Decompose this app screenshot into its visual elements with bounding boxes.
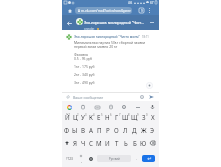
- button[interactable]: Е: [95, 110, 103, 123]
- staticText: Е: [97, 113, 101, 121]
- button[interactable]: Ц: [71, 110, 79, 123]
- button[interactable]: More options: [146, 7, 153, 14]
- button[interactable]: И: [103, 136, 112, 149]
- staticText: Ы: [72, 126, 78, 134]
- button[interactable]: ?123: [63, 149, 76, 167]
- button[interactable]: О: [112, 123, 121, 136]
- button[interactable]: Attach: [65, 94, 71, 100]
- button[interactable]: Backspace: [148, 136, 157, 149]
- button[interactable]: Back: [65, 19, 74, 28]
- staticText: 7: [119, 113, 121, 117]
- button[interactable]: [66, 34, 72, 40]
- button[interactable]: Э: [148, 123, 157, 136]
- staticText: Я: [73, 139, 77, 147]
- button[interactable]: GIF: [93, 103, 101, 111]
- button[interactable]: Т: [112, 136, 121, 149]
- staticText: m.vk.com/mail?act=show&peer: [81, 8, 131, 13]
- staticText: В: [81, 126, 86, 134]
- staticText: GIF: [96, 106, 100, 109]
- staticText: Ш: [122, 113, 129, 121]
- button[interactable]: Settings: [120, 103, 128, 111]
- staticText: ?123: [66, 157, 73, 161]
- button[interactable]: Comma and emoji: [76, 149, 86, 167]
- button[interactable]: Scroll to bottom: [146, 82, 153, 89]
- button[interactable]: М: [95, 136, 103, 149]
- staticText: 5: [101, 113, 103, 117]
- staticText: 2: [77, 113, 79, 117]
- staticText: Русский: [109, 157, 120, 161]
- staticText: Д: [132, 126, 137, 134]
- button[interactable]: Enter: [142, 155, 155, 162]
- staticText: Ь: [124, 139, 128, 147]
- staticText: 4:5: [128, 1, 133, 5]
- button[interactable]: Tabs: [138, 7, 145, 14]
- staticText: Э: [150, 126, 155, 134]
- button[interactable]: Ч: [79, 136, 87, 149]
- button[interactable]: Г: [112, 110, 121, 123]
- button[interactable]: С: [87, 136, 95, 149]
- button[interactable]: Google search: [65, 103, 73, 111]
- staticText: У: [81, 113, 85, 121]
- staticText: С: [89, 139, 93, 147]
- staticText: Т: [115, 139, 119, 147]
- staticText: Н: [105, 113, 110, 121]
- button[interactable]: У: [79, 110, 87, 123]
- button[interactable]: Б: [130, 136, 139, 149]
- button[interactable]: Д: [130, 123, 139, 136]
- button[interactable]: [76, 18, 83, 25]
- staticText: Ваше сообщение: [73, 95, 104, 100]
- button[interactable]: Н: [103, 110, 112, 123]
- button[interactable]: З: [139, 110, 148, 123]
- button[interactable]: Emoji: [139, 94, 145, 100]
- button[interactable]: А: [87, 123, 95, 136]
- button[interactable]: Х: [148, 110, 157, 123]
- button[interactable]: m.vk.com/mail?act=show&peer: [75, 7, 132, 14]
- button[interactable]: Л: [121, 123, 130, 136]
- button[interactable]: Ш: [121, 110, 130, 123]
- button[interactable]: Ь: [121, 136, 130, 149]
- staticText: И: [105, 139, 110, 147]
- button[interactable]: П: [95, 123, 103, 136]
- staticText: Щ: [131, 113, 138, 121]
- button[interactable]: Ж: [139, 123, 148, 136]
- staticText: Л: [123, 126, 128, 134]
- staticText: Минимальная партия 50кг сборной заявки п…: [74, 40, 159, 85]
- staticText: З: [142, 113, 146, 121]
- staticText: Й: [65, 113, 70, 121]
- button[interactable]: Clipboard: [79, 103, 87, 111]
- staticText: Эко-порошок кислородный "Чисто моем": [74, 35, 140, 39]
- staticText: Эко-порошок кислородный "Чист...: [84, 20, 144, 25]
- staticText: 8: [128, 113, 130, 117]
- staticText: 9: [141, 9, 143, 13]
- staticText: Ю: [140, 139, 147, 147]
- button[interactable]: Chat menu: [148, 18, 156, 26]
- button[interactable]: Home: [66, 7, 73, 14]
- button[interactable]: Shift: [63, 136, 71, 149]
- button[interactable]: К: [87, 110, 95, 123]
- button[interactable]: More: [134, 103, 142, 111]
- staticText: Ц: [73, 113, 78, 121]
- staticText: 9: [137, 113, 139, 117]
- button[interactable]: Space: [97, 155, 131, 162]
- staticText: К: [89, 113, 93, 121]
- staticText: Х: [151, 113, 155, 121]
- button[interactable]: Voice input: [148, 103, 156, 111]
- button[interactable]: Ы: [71, 123, 79, 136]
- staticText: 0: [146, 113, 148, 117]
- button[interactable]: Ф: [63, 123, 71, 136]
- button[interactable]: Я: [71, 136, 79, 149]
- staticText: Ч: [81, 139, 86, 147]
- button[interactable]: Ю: [139, 136, 148, 149]
- button[interactable]: Р: [103, 123, 112, 136]
- staticText: М: [96, 139, 102, 147]
- button[interactable]: В: [79, 123, 87, 136]
- button[interactable]: Send: [148, 94, 154, 100]
- button[interactable]: Change language: [86, 149, 96, 167]
- button[interactable]: Stickers: [107, 103, 115, 111]
- button[interactable]: Щ: [130, 110, 139, 123]
- staticText: 4: [93, 113, 95, 117]
- staticText: 1: [69, 113, 71, 117]
- staticText: Ж: [141, 126, 147, 134]
- button[interactable]: Й: [63, 110, 71, 123]
